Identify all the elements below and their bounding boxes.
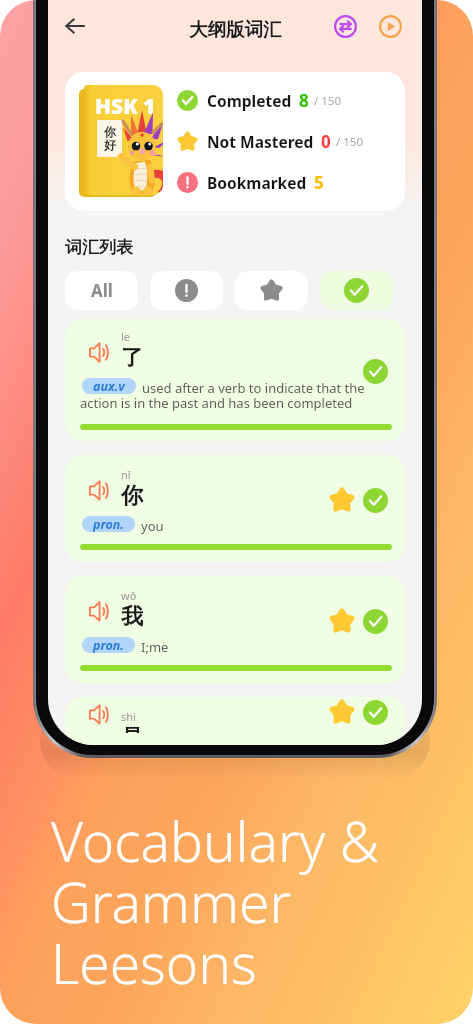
staticText: 我 — [121, 603, 143, 631]
button[interactable]: Not mastered filter — [150, 271, 223, 310]
staticText: pron. — [93, 516, 124, 532]
staticText: Vocabulary & Grammer Leesons — [51, 803, 380, 1000]
button[interactable]: Play audio — [65, 697, 405, 745]
staticText: shi — [121, 709, 136, 724]
staticText: 0 — [321, 130, 331, 153]
staticText: pron. — [93, 637, 124, 653]
staticText: 你 好 — [104, 124, 116, 153]
staticText: used after a verb to indicate that the — [142, 379, 365, 397]
staticText: Not Mastered — [207, 131, 314, 152]
button[interactable]: All — [65, 271, 138, 310]
staticText: 词汇列表 — [65, 237, 133, 258]
staticText: Completed — [207, 90, 292, 111]
staticText: wǒ — [121, 588, 137, 603]
button[interactable]: Back — [55, 6, 95, 46]
button[interactable]: Play audio — [65, 319, 405, 441]
button[interactable]: Play all — [374, 10, 406, 42]
staticText: 是 — [121, 724, 143, 733]
staticText: nǐ — [121, 467, 131, 482]
staticText: I;me — [141, 638, 169, 656]
button[interactable]: Switch language — [329, 10, 361, 42]
staticText: 大纲版词汇 — [189, 18, 282, 41]
staticText: / 150 — [314, 93, 342, 109]
button[interactable]: Play audio — [65, 455, 405, 562]
staticText: HSK 1 — [95, 92, 156, 121]
staticText: aux.v — [93, 378, 125, 394]
button[interactable]: Play audio — [87, 702, 113, 726]
staticText: All — [91, 279, 113, 302]
staticText: 8 — [299, 89, 309, 112]
staticText: 你 — [121, 482, 143, 510]
button[interactable]: Completed filter — [320, 271, 393, 310]
button[interactable]: Bookmarked filter — [235, 271, 308, 310]
button[interactable]: Play audio — [87, 339, 113, 365]
staticText: Bookmarked — [207, 172, 307, 193]
button[interactable]: Play audio — [87, 477, 113, 503]
staticText: 了 — [121, 344, 143, 372]
staticText: le — [121, 329, 131, 344]
staticText: you — [141, 517, 164, 535]
staticText: action is in the past and has been compl… — [80, 394, 353, 412]
staticText: / 150 — [336, 134, 364, 150]
button[interactable]: HSK 1 — [65, 72, 405, 211]
staticText: 5 — [314, 171, 324, 194]
button[interactable]: Play audio — [65, 576, 405, 683]
button[interactable]: Play audio — [87, 598, 113, 624]
